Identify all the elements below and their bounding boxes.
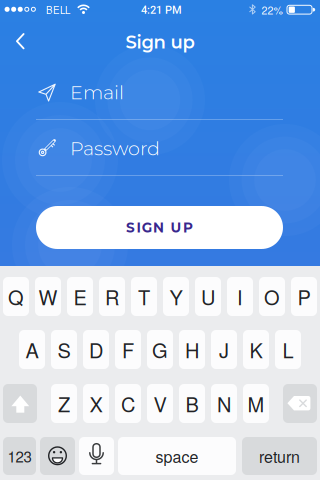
- staticText: D: [89, 335, 103, 364]
- button[interactable]: U: [195, 277, 221, 316]
- staticText: S: [57, 335, 70, 364]
- staticText: Y: [169, 282, 182, 311]
- staticText: G: [152, 335, 168, 364]
- button[interactable]: N: [211, 384, 237, 423]
- staticText: Q: [8, 282, 24, 311]
- button[interactable]: Q: [3, 277, 29, 316]
- staticText: W: [38, 282, 57, 311]
- button[interactable]: Email: [36, 75, 283, 119]
- button[interactable]: Z: [51, 384, 77, 423]
- button[interactable]: G: [147, 330, 173, 369]
- staticText: space: [155, 444, 198, 467]
- staticText: X: [89, 389, 102, 418]
- staticText: J: [219, 335, 229, 364]
- button[interactable]: V: [147, 384, 173, 423]
- staticText: return: [259, 444, 300, 467]
- button[interactable]: S: [51, 330, 77, 369]
- button[interactable]: O: [259, 277, 285, 316]
- staticText: U: [201, 282, 215, 311]
- button[interactable]: Shift: [3, 384, 37, 423]
- staticText: Email: [70, 81, 124, 104]
- button[interactable]: Back: [0, 19, 42, 63]
- button[interactable]: J: [211, 330, 237, 369]
- button[interactable]: E: [67, 277, 93, 316]
- button[interactable]: Password: [36, 131, 283, 175]
- button[interactable]: Emoji: [40, 437, 75, 475]
- staticText: T: [138, 282, 150, 311]
- button[interactable]: F: [115, 330, 141, 369]
- staticText: M: [247, 389, 264, 418]
- button[interactable]: I: [227, 277, 253, 316]
- staticText: K: [249, 335, 262, 364]
- button[interactable]: P: [291, 277, 317, 316]
- staticText: V: [153, 389, 166, 418]
- button[interactable]: R: [99, 277, 125, 316]
- button[interactable]: H: [179, 330, 205, 369]
- staticText: 123: [7, 445, 31, 467]
- staticText: I: [237, 282, 243, 311]
- button[interactable]: SIGN UP: [36, 206, 283, 249]
- staticText: E: [73, 282, 86, 311]
- staticText: BELL: [46, 3, 70, 17]
- button[interactable]: L: [275, 330, 301, 369]
- staticText: 4:21 PM: [141, 4, 182, 16]
- staticText: B: [185, 389, 198, 418]
- button[interactable]: X: [83, 384, 109, 423]
- staticText: O: [264, 282, 280, 311]
- button[interactable]: K: [243, 330, 269, 369]
- staticText: N: [217, 389, 231, 418]
- button[interactable]: Y: [163, 277, 189, 316]
- staticText: H: [185, 335, 199, 364]
- staticText: SIGN UP: [126, 219, 193, 236]
- button[interactable]: 123: [3, 437, 36, 475]
- staticText: F: [122, 335, 134, 364]
- button[interactable]: D: [83, 330, 109, 369]
- button[interactable]: T: [131, 277, 157, 316]
- button[interactable]: Dictate: [79, 437, 114, 475]
- staticText: Sign up: [125, 31, 194, 53]
- staticText: R: [105, 282, 119, 311]
- staticText: Password: [70, 137, 160, 160]
- button[interactable]: Delete: [283, 384, 317, 423]
- staticText: Z: [58, 389, 70, 418]
- button[interactable]: B: [179, 384, 205, 423]
- button[interactable]: return: [242, 437, 317, 475]
- button[interactable]: W: [35, 277, 61, 316]
- staticText: C: [121, 389, 135, 418]
- staticText: 22%: [261, 2, 282, 18]
- staticText: P: [297, 282, 310, 311]
- staticText: A: [25, 335, 38, 364]
- button[interactable]: M: [243, 384, 269, 423]
- staticText: L: [282, 335, 293, 364]
- button[interactable]: C: [115, 384, 141, 423]
- button[interactable]: space: [118, 437, 236, 475]
- button[interactable]: A: [19, 330, 45, 369]
